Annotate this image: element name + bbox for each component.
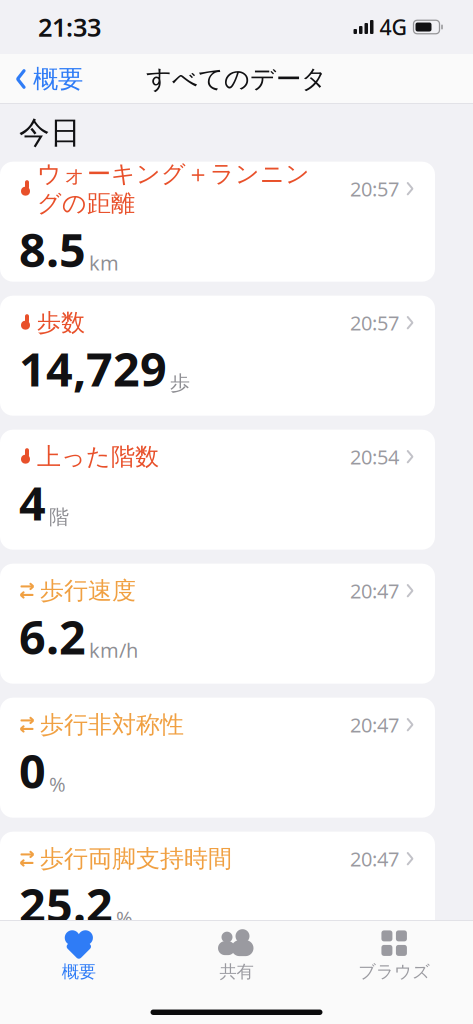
button[interactable]: 歩行非対称性 (0, 698, 435, 818)
staticText: 8.5 (19, 218, 86, 280)
staticText: 歩行非対称性 (40, 710, 184, 739)
staticText: % (116, 905, 133, 931)
staticText: 共有 (219, 961, 253, 982)
staticText: 歩 (170, 371, 190, 395)
button[interactable]: 歩行速度 (0, 564, 435, 684)
staticText: 歩数 (37, 308, 85, 337)
staticText: km/h (89, 637, 138, 663)
staticText: 20:57 (350, 309, 399, 336)
staticText: % (49, 771, 66, 797)
staticText: 概要 (33, 63, 83, 94)
staticText: ブラウズ (358, 961, 430, 982)
staticText: 6.2 (19, 605, 86, 667)
staticText: 4G (379, 13, 407, 41)
staticText: 20:57 (350, 175, 399, 202)
staticText: 概要 (62, 961, 96, 982)
staticText: 歩行速度 (40, 576, 136, 605)
button[interactable]: ブラウズ (315, 921, 473, 982)
staticText: 14,729 (19, 337, 167, 399)
button[interactable]: 概要 (0, 921, 158, 982)
button[interactable]: 共有 (158, 921, 315, 982)
staticText: 20:47 (350, 577, 399, 604)
staticText: すべてのデータ (146, 63, 327, 94)
staticText: 0 (19, 739, 46, 801)
staticText: 今日 (19, 114, 81, 152)
staticText: 20:47 (350, 845, 399, 872)
staticText: km (89, 250, 119, 276)
staticText: 歩行両脚支持時間 (40, 844, 232, 873)
staticText: 階 (49, 505, 69, 529)
staticText: ウォーキング＋ランニングの距離 (37, 159, 310, 218)
button[interactable]: 歩行両脚支持時間 (0, 832, 435, 952)
staticText: 20:47 (350, 711, 399, 738)
staticText: 21:33 (38, 10, 101, 44)
staticText: 20:54 (350, 443, 399, 470)
button[interactable]: ウォーキング＋ランニングの距離 (0, 162, 435, 282)
staticText: 4 (19, 471, 46, 533)
button[interactable]: 上った階数 (0, 430, 435, 550)
staticText: 上った階数 (37, 442, 159, 471)
staticText: 25.2 (19, 873, 113, 935)
button[interactable]: 歩数 (0, 296, 435, 416)
button[interactable]: 概要 (0, 55, 83, 102)
